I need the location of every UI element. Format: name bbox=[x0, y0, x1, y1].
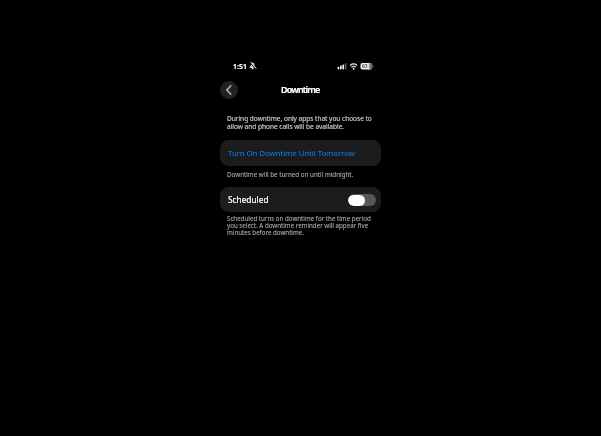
staticText: Scheduled bbox=[228, 194, 269, 205]
button[interactable] bbox=[220, 81, 238, 99]
staticText: 63 bbox=[362, 63, 368, 70]
staticText: 1:51 bbox=[233, 62, 247, 72]
staticText: During downtime, only apps that you choo… bbox=[227, 114, 372, 131]
staticText: Downtime will be turned on until midnigh… bbox=[227, 170, 354, 179]
button[interactable]: Scheduled bbox=[220, 187, 381, 212]
staticText: Downtime bbox=[281, 83, 320, 95]
staticText: Scheduled turns on downtime for the time… bbox=[227, 214, 371, 236]
button[interactable]: Turn On Downtime Until Tomorrow bbox=[220, 140, 381, 166]
staticText: Turn On Downtime Until Tomorrow bbox=[228, 148, 355, 159]
button[interactable] bbox=[348, 194, 376, 206]
